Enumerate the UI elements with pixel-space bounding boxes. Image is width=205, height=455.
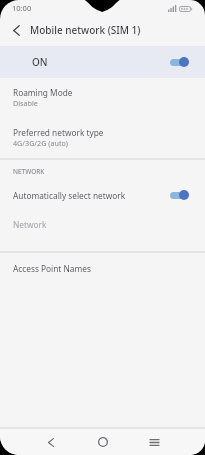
staticText: Access Point Names [13, 263, 91, 274]
staticText: Mobile network (SIM 1) [30, 23, 141, 37]
staticText: Network [13, 219, 47, 230]
staticText: Automatically select network [13, 190, 126, 201]
staticText: ON [32, 55, 48, 69]
staticText: 10:00 [12, 3, 32, 13]
button[interactable]: ON [0, 46, 205, 78]
button[interactable]: Recent apps [139, 429, 169, 455]
button[interactable]: Home [88, 429, 118, 455]
button[interactable]: Roaming Mode [0, 78, 205, 118]
button[interactable]: Automatically select network [0, 181, 205, 209]
staticText: Preferred network type [13, 127, 104, 138]
button[interactable]: Back [6, 16, 26, 44]
button[interactable]: Access Point Names [0, 253, 205, 283]
staticText: Roaming Mode [13, 87, 73, 98]
staticText: Disable [13, 98, 38, 108]
button[interactable]: Preferred network type [0, 118, 205, 158]
button[interactable]: Back [36, 429, 66, 455]
staticText: 4G/3G/2G (auto) [13, 138, 68, 148]
staticText: NETWORK [13, 167, 45, 176]
button[interactable]: Network [0, 209, 205, 251]
